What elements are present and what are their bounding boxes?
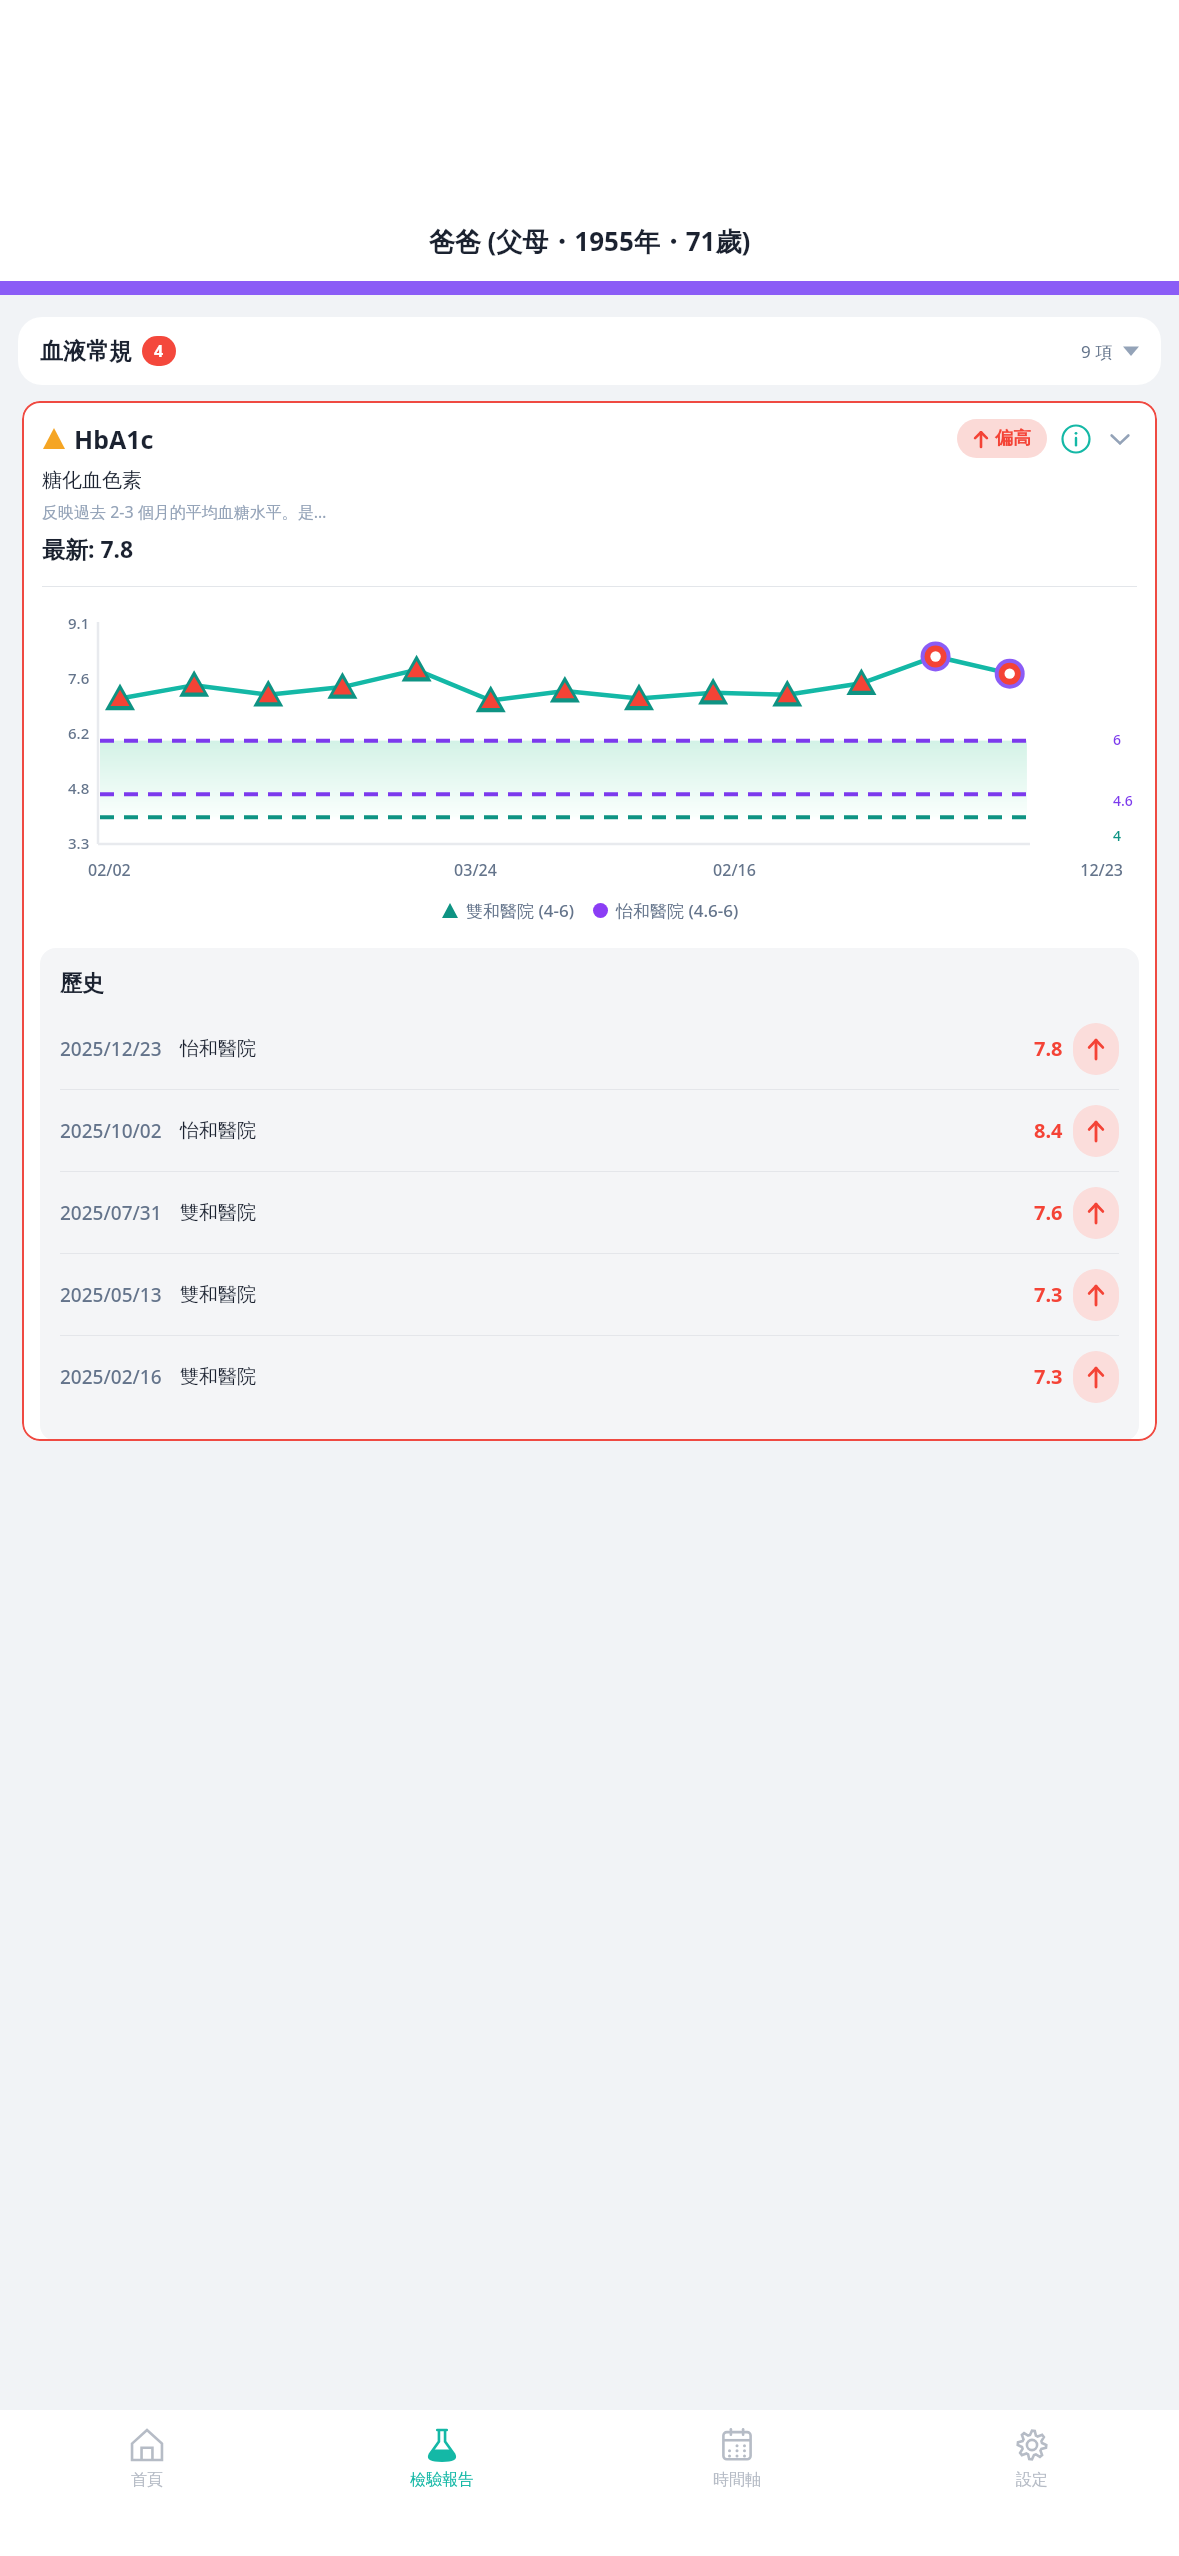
button[interactable]: 展開 [1103,422,1137,456]
staticText: 7.6 [1034,1199,1063,1226]
staticText: 設定 [1016,2470,1048,2490]
staticText: 4.8 [68,778,90,798]
button[interactable]: 時間軸 [589,2424,884,2556]
staticText: 6.2 [68,723,90,743]
staticText: 2025/05/13 [60,1282,162,1308]
staticText: 雙和醫院 [180,1201,256,1225]
staticText: 12/23 [864,859,1123,881]
staticText: 爸爸 (父母・1955年・71歲) [0,223,1179,259]
staticText: 8.4 [1034,1117,1063,1144]
staticText: 2025/02/16 [60,1364,162,1390]
staticText: 4.6 [1113,791,1133,810]
staticText: 雙和醫院 [180,1283,256,1307]
staticText: 2025/07/31 [60,1200,162,1226]
staticText: 糖化血色素 [42,468,142,493]
button[interactable]: 2025/10/02 [60,1090,1119,1171]
button[interactable]: 2025/07/31 [60,1172,1119,1253]
button[interactable]: 設定 [884,2424,1179,2556]
staticText: 3.3 [68,833,90,853]
staticText: 雙和醫院 (4-6) [466,899,574,922]
button[interactable]: 首頁 [0,2424,294,2556]
button[interactable]: 2025/02/16 [60,1336,1119,1417]
staticText: 9 項 [1081,340,1113,363]
staticText: 7.3 [1034,1281,1063,1308]
staticText: 檢驗報告 [410,2470,474,2490]
staticText: 4 [154,340,164,362]
staticText: 7.6 [68,668,90,688]
staticText: 7.8 [1034,1035,1063,1062]
staticText: 怡和醫院 [180,1119,256,1143]
staticText: 02/02 [88,859,346,881]
staticText: 歷史 [60,970,104,998]
button[interactable]: 2025/12/23 [60,1008,1119,1089]
staticText: 怡和醫院 [180,1037,256,1061]
staticText: 4 [1113,826,1122,845]
staticText: 9.1 [68,613,90,633]
button[interactable]: HbA1c [42,419,1137,458]
button[interactable]: 2025/05/13 [60,1254,1119,1335]
staticText: 2025/10/02 [60,1118,162,1144]
staticText: HbA1c [74,422,154,456]
button[interactable]: 血液常規 [18,317,1161,385]
button[interactable]: 偏高 [957,419,1047,458]
staticText: 2025/12/23 [60,1036,162,1062]
staticText: 反映過去 2-3 個月的平均血糖水平。是… [42,501,327,523]
staticText: 偏高 [995,427,1031,450]
button[interactable]: 資訊 [1059,422,1093,456]
staticText: 02/16 [605,859,864,881]
button[interactable]: 檢驗報告 [294,2424,589,2556]
staticText: 怡和醫院 (4.6-6) [616,899,739,922]
staticText: 雙和醫院 [180,1365,256,1389]
staticText: 首頁 [131,2470,163,2490]
staticText: 血液常規 [40,337,132,366]
staticText: 7.3 [1034,1363,1063,1390]
staticText: 時間軸 [713,2470,761,2490]
staticText: 03/24 [346,859,605,881]
staticText: 6 [1113,730,1122,749]
staticText: 最新: 7.8 [42,533,134,564]
